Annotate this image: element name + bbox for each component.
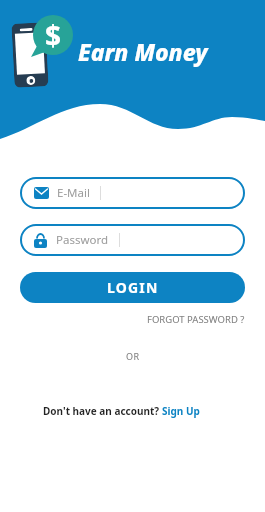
button[interactable]: FORGOT PASSWORD ? [147,313,245,326]
staticText: Password [56,232,109,248]
staticText: Don't have an account? [43,404,162,418]
staticText: OR [126,350,140,362]
button[interactable]: Sign Up [162,404,200,418]
button[interactable]: Password [20,224,245,256]
staticText: Earn Money [78,36,208,67]
staticText: E-Mail [57,185,90,201]
staticText: LOGIN [107,278,159,297]
staticText: $ [45,16,62,54]
button[interactable]: LOGIN [20,272,245,303]
button[interactable]: E-Mail [20,177,245,209]
